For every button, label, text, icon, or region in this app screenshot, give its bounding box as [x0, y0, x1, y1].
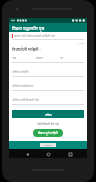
- staticText: विक्रय पद्धतशीर पृष्ठ: [12, 25, 45, 31]
- button[interactable]: अधिक माहितीसाठी येथे: [12, 98, 84, 105]
- staticText: SUBMIT: [44, 144, 53, 147]
- button[interactable]: Recent apps: [66, 150, 74, 158]
- staticText: अधिक माहिती: [12, 70, 29, 74]
- staticText: जोडा: [45, 112, 52, 117]
- staticText: अधिक माहितीसाठी येथे: [12, 98, 39, 102]
- staticText: विक्रय पूर्ण माहिती: [38, 131, 58, 135]
- staticText: माहितीसाठी येथे पहा: [12, 122, 84, 126]
- button[interactable]: Home: [44, 150, 52, 158]
- button[interactable]: SUBMIT: [9, 141, 87, 149]
- button[interactable]: Back: [23, 150, 31, 158]
- staticText: नाव: [12, 56, 36, 60]
- staticText: 0 / 30: [12, 41, 84, 44]
- button[interactable]: विक्रय पूर्ण माहिती: [33, 129, 63, 137]
- staticText: संख्या: [36, 56, 60, 60]
- button[interactable]: अधिक माहिती: [12, 70, 84, 77]
- button[interactable]: जोडा: [12, 110, 84, 118]
- staticText: अधिक तपशीलवार: [12, 84, 34, 88]
- button[interactable]: कृपया येथे शोधण्यासाठी माहिती भरा: [12, 34, 84, 38]
- staticText: कृपया येथे शोधण्यासाठी माहिती भरा: [14, 34, 56, 38]
- staticText: दर: [60, 56, 84, 60]
- button[interactable]: विक्रय पद्धतशीर पृष्ठ: [9, 23, 87, 32]
- staticText: निवडलेली माहिती :: [12, 47, 41, 52]
- button[interactable]: अधिक तपशीलवार: [12, 84, 84, 91]
